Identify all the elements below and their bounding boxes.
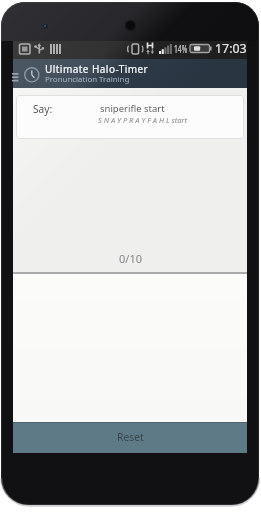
staticText: 14% <box>174 41 188 56</box>
staticText: 0/10 <box>119 251 142 266</box>
button[interactable]: Reset <box>13 422 247 453</box>
button[interactable] <box>13 73 20 84</box>
staticText: S N A Y P R A Y F A H L start <box>98 115 188 125</box>
staticText: Say: <box>33 102 53 116</box>
staticText: sniperifle start <box>100 102 165 115</box>
button[interactable]: Say: <box>16 95 244 139</box>
staticText: Pronunciation Training <box>45 74 130 85</box>
staticText: Reset <box>117 430 144 444</box>
staticText: 17:03 <box>215 39 247 57</box>
staticText: Ultimate Halo-Timer <box>45 62 149 76</box>
